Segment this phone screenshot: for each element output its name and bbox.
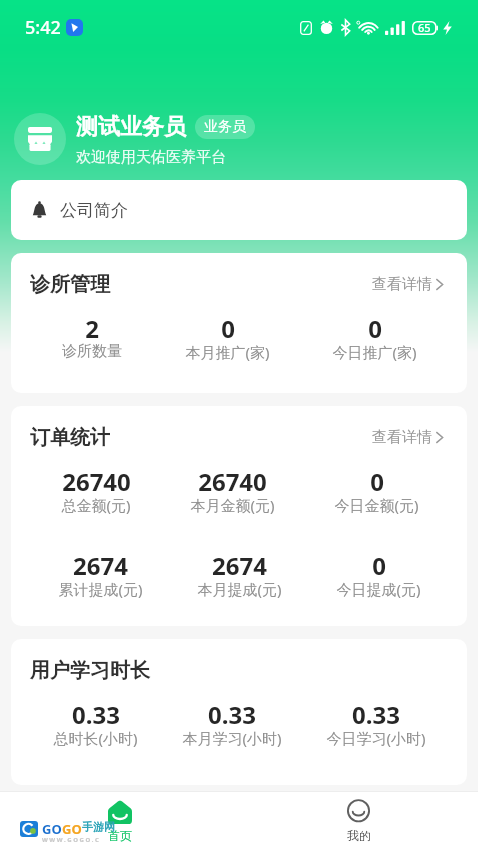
staticText: 0.33 <box>352 698 400 731</box>
staticText: 查看详情 <box>372 275 432 294</box>
staticText: 手游网 <box>82 820 115 834</box>
staticText: W W W . G O G O . C <box>42 836 99 844</box>
button[interactable]: 首页 <box>0 794 239 849</box>
staticText: 总时长(小时) <box>53 728 138 748</box>
button[interactable]: 查看详情 <box>372 275 444 294</box>
staticText: 5:42 <box>25 15 61 40</box>
staticText: 本月推广(家) <box>185 342 270 362</box>
staticText: 欢迎使用天佑医养平台 <box>76 148 226 167</box>
staticText: 0 <box>368 312 382 345</box>
staticText: 0.33 <box>208 698 256 731</box>
staticText: 本月学习(小时) <box>182 728 282 748</box>
staticText: 今日学习(小时) <box>326 728 426 748</box>
staticText: 业务员 <box>204 118 246 136</box>
staticText: GO <box>62 820 82 838</box>
staticText: 2674 <box>73 549 128 582</box>
staticText: 测试业务员 <box>76 113 186 141</box>
staticText: 26740 <box>198 465 267 498</box>
staticText: 我的 <box>347 828 371 843</box>
staticText: 0 <box>221 312 235 345</box>
staticText: 总金额(元) <box>61 495 131 515</box>
staticText: 今日提成(元) <box>336 579 421 599</box>
staticText: 26740 <box>62 465 131 498</box>
staticText: 2674 <box>212 549 267 582</box>
staticText: 首页 <box>108 828 132 843</box>
staticText: 诊所数量 <box>62 342 122 361</box>
staticText: 订单统计 <box>30 425 110 450</box>
staticText: 0 <box>372 549 386 582</box>
button[interactable]: 查看详情 <box>372 428 444 447</box>
staticText: 本月金额(元) <box>190 495 275 515</box>
staticText: 查看详情 <box>372 428 432 447</box>
staticText: 今日金额(元) <box>334 495 419 515</box>
staticText: 累计提成(元) <box>58 579 143 599</box>
staticText: 65 <box>418 20 431 35</box>
staticText: 0.33 <box>72 698 120 731</box>
staticText: 本月提成(元) <box>197 579 282 599</box>
staticText: 公司简介 <box>60 200 128 221</box>
button[interactable]: 我的 <box>239 793 478 849</box>
staticText: 用户学习时长 <box>30 658 150 683</box>
staticText: 今日推广(家) <box>332 342 417 362</box>
staticText: 诊所管理 <box>30 272 110 297</box>
button[interactable]: 公司简介 <box>11 180 467 240</box>
staticText: GO <box>42 820 62 838</box>
staticText: 2 <box>85 312 99 345</box>
staticText: 0 <box>370 465 384 498</box>
